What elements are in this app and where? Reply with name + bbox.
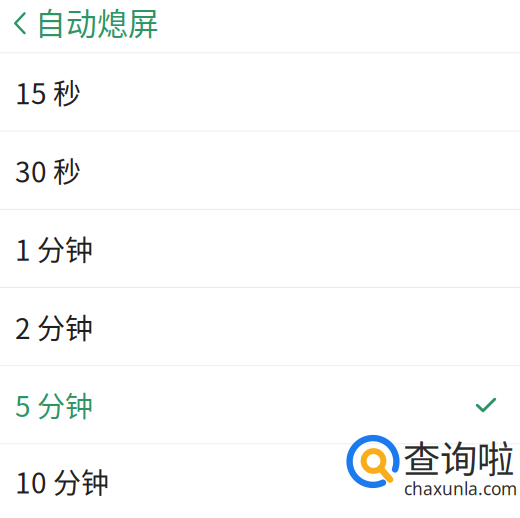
button[interactable]: 1 分钟 bbox=[0, 210, 520, 288]
button[interactable]: 10 分钟 bbox=[0, 444, 520, 518]
staticText: 自动熄屏 bbox=[35, 0, 159, 44]
staticText: 2 分钟 bbox=[15, 306, 93, 347]
button[interactable]: 15 秒 bbox=[0, 53, 520, 132]
staticText: 1 分钟 bbox=[15, 228, 93, 269]
staticText: chaxunla.com bbox=[404, 477, 517, 500]
button[interactable]: Back bbox=[0, 0, 520, 53]
staticText: 30 秒 bbox=[15, 150, 81, 190]
button[interactable]: 5 分钟 bbox=[0, 366, 520, 444]
staticText: 10 分钟 bbox=[15, 461, 109, 501]
staticText: 15 秒 bbox=[15, 72, 81, 112]
staticText: 查询啦 bbox=[403, 430, 514, 484]
button[interactable]: 30 秒 bbox=[0, 132, 520, 210]
button[interactable]: 2 分钟 bbox=[0, 288, 520, 366]
staticText: 5 分钟 bbox=[15, 385, 93, 425]
